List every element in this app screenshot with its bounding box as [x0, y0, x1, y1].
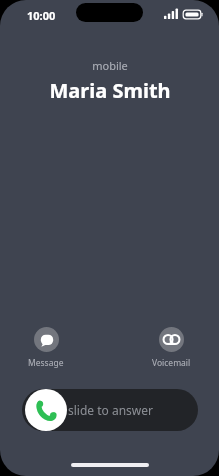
staticText: 10:00 [27, 8, 56, 23]
staticText: Voicemail [152, 357, 191, 369]
button[interactable]: slide to answer [22, 389, 198, 431]
button[interactable]: Answer call [25, 389, 67, 431]
staticText: Maria Smith [49, 77, 171, 104]
button[interactable]: Voicemail [146, 325, 197, 371]
staticText: slide to answer [68, 402, 153, 418]
staticText: mobile [92, 58, 128, 73]
staticText: Message [28, 357, 64, 369]
button[interactable]: Message [22, 325, 70, 371]
